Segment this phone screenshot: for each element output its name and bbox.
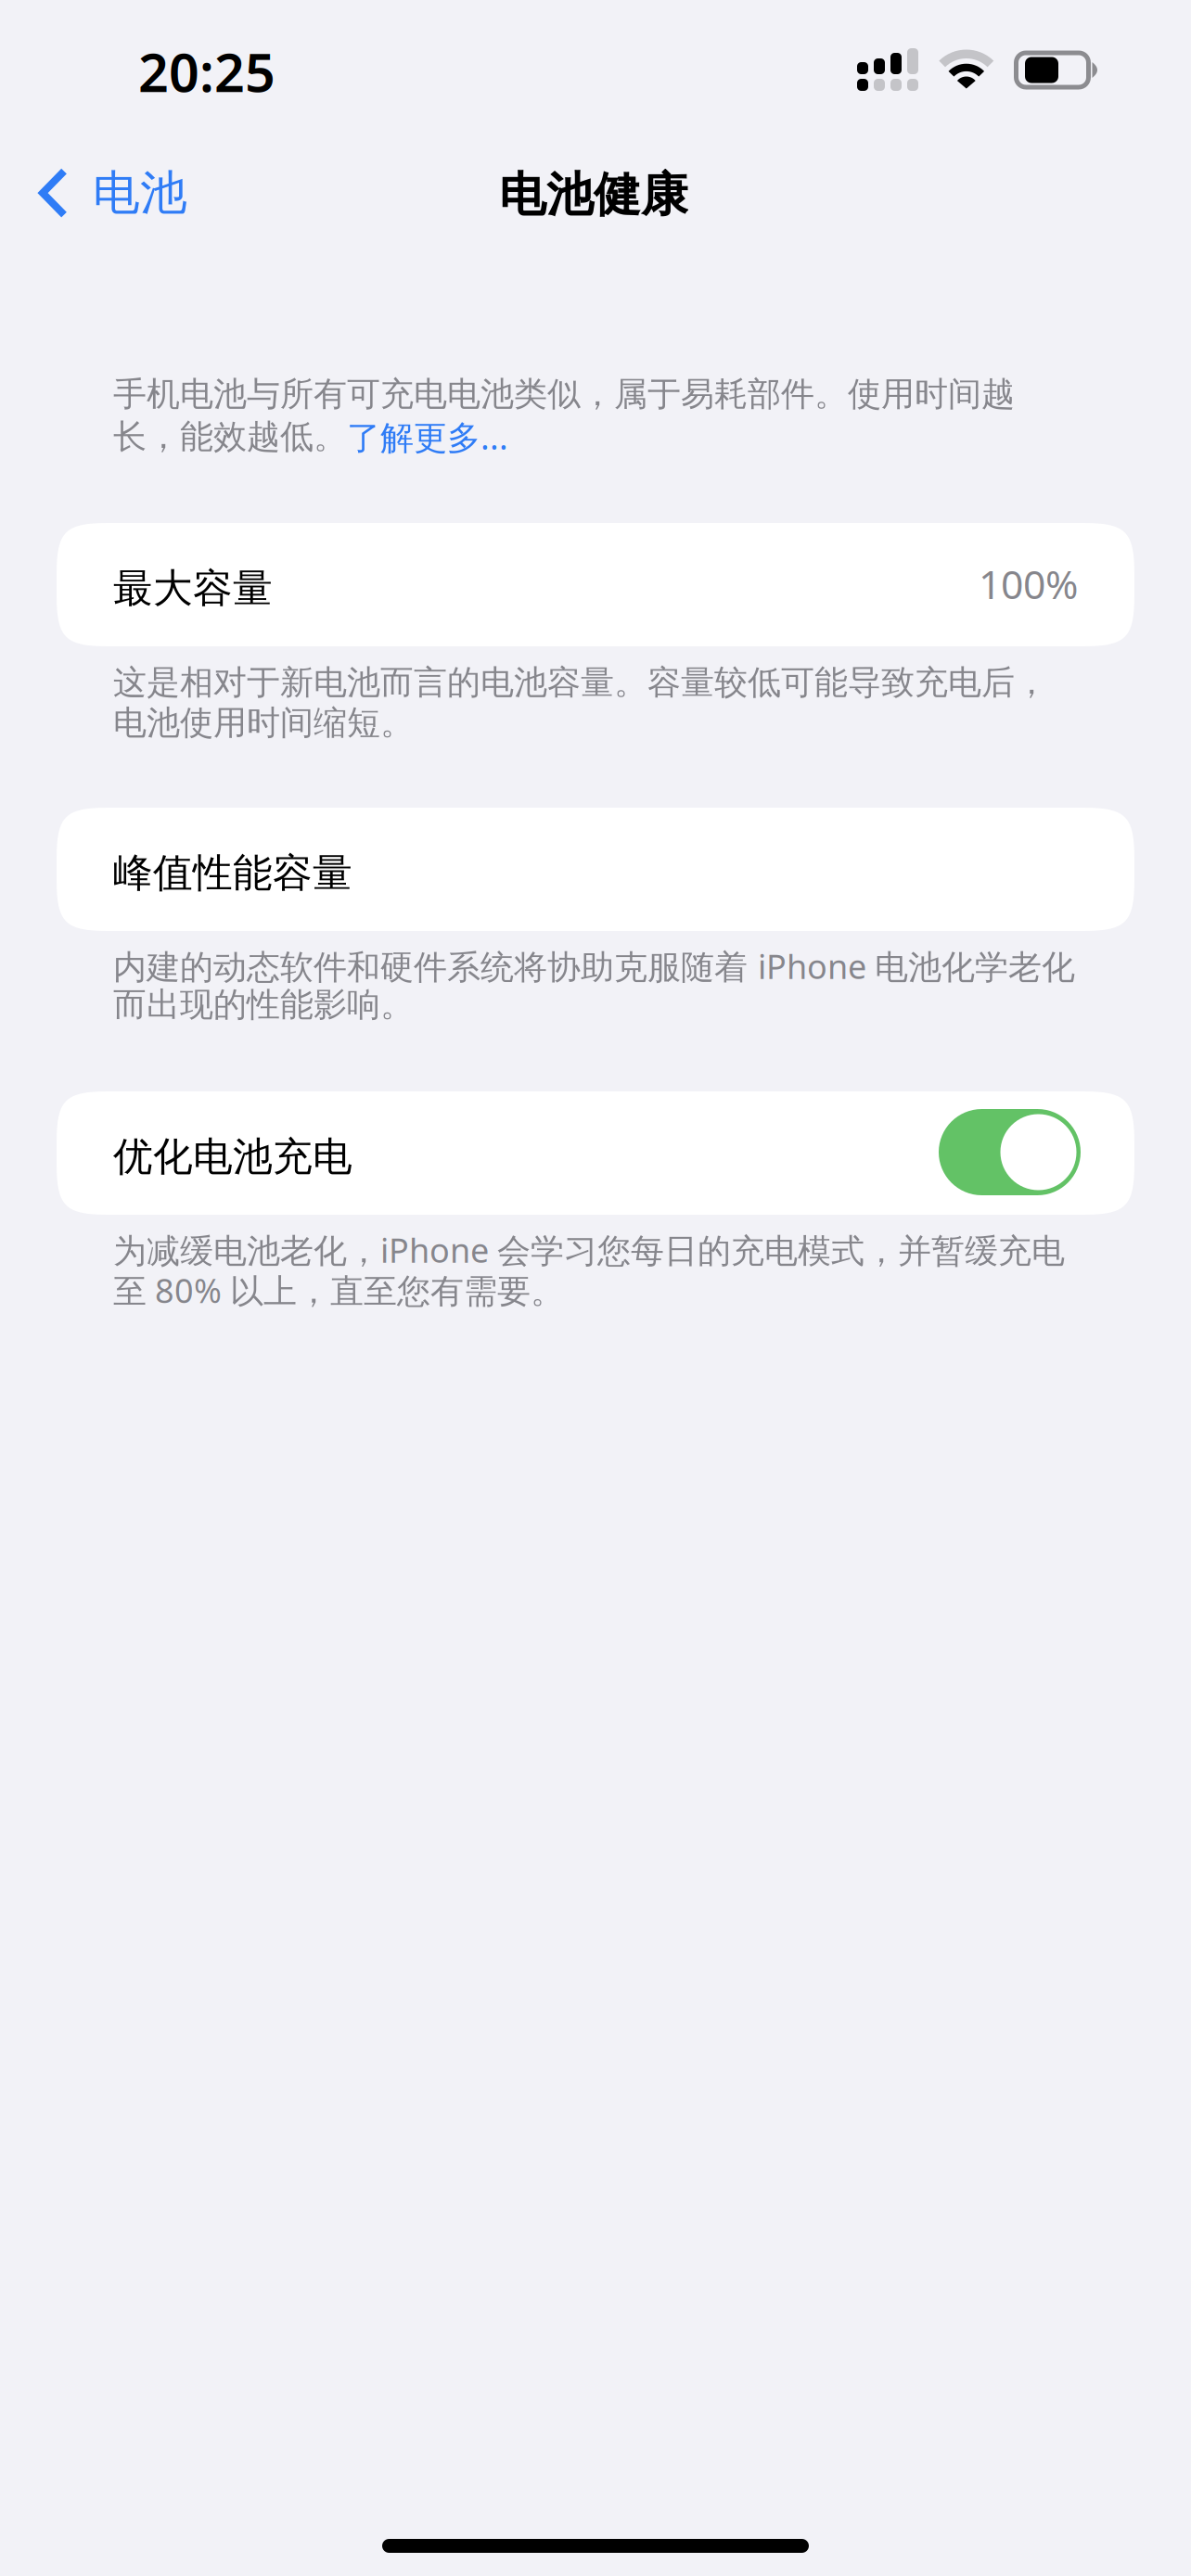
staticText: 峰值性能容量 (113, 849, 352, 897)
staticText: 100% (979, 557, 1078, 610)
staticText: 电池健康 (499, 166, 688, 224)
button[interactable]: 优化电池充电 (936, 1110, 1078, 1196)
staticText: 而出现的性能影响。 (113, 984, 414, 1025)
button[interactable]: 峰值性能容量 (0, 0, 1078, 123)
staticText: 为减缓电池老化，iPhone 会学习您每日的充电模式，并暂缓充电 (113, 1228, 1065, 1272)
staticText: 至 80% 以上，直至您有需要。 (113, 1268, 564, 1312)
staticText: 电池使用时间缩短。 (113, 702, 414, 743)
staticText: 电池 (93, 164, 187, 222)
staticText: 20:25 (138, 36, 275, 107)
staticText: 最大容量 (113, 564, 273, 613)
staticText: 手机电池与所有可充电电池类似，属于易耗部件。使用时间越 (113, 374, 1015, 415)
button[interactable]: 电池 (0, 146, 211, 240)
staticText: 长，能效越低。 (113, 416, 347, 457)
button[interactable]: 了解更多... (347, 415, 508, 459)
staticText: 优化电池充电 (113, 1132, 352, 1181)
staticText: 这是相对于新电池而言的电池容量。容量较低可能导致充电后， (113, 662, 1048, 703)
staticText: 内建的动态软件和硬件系统将协助克服随着 iPhone 电池化学老化 (113, 944, 1075, 988)
staticText: 了解更多... (347, 415, 508, 459)
